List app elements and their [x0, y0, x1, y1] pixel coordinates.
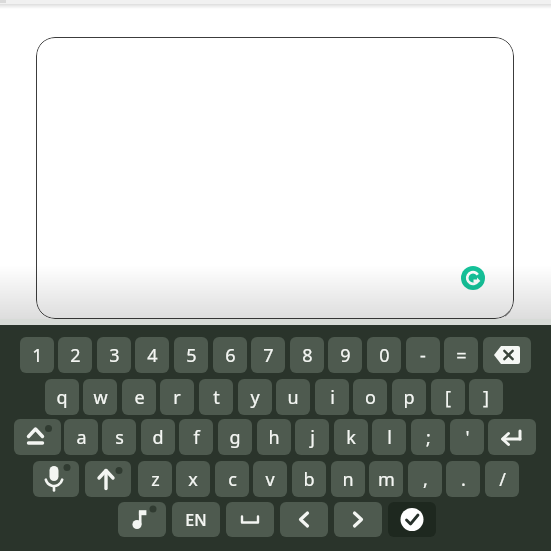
- button[interactable]: c: [215, 461, 249, 497]
- staticText: h: [268, 425, 280, 450]
- button[interactable]: i: [315, 379, 349, 415]
- staticText: q: [56, 385, 68, 410]
- staticText: z: [151, 467, 160, 492]
- button[interactable]: ': [450, 419, 484, 455]
- staticText: -: [420, 343, 426, 368]
- staticText: 3: [109, 343, 120, 368]
- button[interactable]: t: [199, 379, 233, 415]
- button[interactable]: b: [292, 461, 326, 497]
- staticText: n: [342, 467, 354, 492]
- staticText: b: [303, 467, 315, 492]
- button[interactable]: [388, 502, 436, 537]
- staticText: a: [76, 425, 87, 450]
- staticText: 4: [147, 343, 158, 368]
- button[interactable]: q: [45, 379, 79, 415]
- staticText: v: [265, 467, 275, 492]
- staticText: j: [310, 425, 315, 450]
- button[interactable]: 7: [251, 337, 285, 373]
- button[interactable]: 9: [328, 337, 362, 373]
- button[interactable]: l: [372, 419, 406, 455]
- staticText: ': [465, 425, 470, 450]
- button[interactable]: 6: [213, 337, 247, 373]
- staticText: i: [330, 385, 335, 410]
- staticText: l: [387, 425, 392, 450]
- staticText: 7: [263, 343, 274, 368]
- button[interactable]: v: [253, 461, 287, 497]
- staticText: o: [365, 385, 376, 410]
- button[interactable]: 4: [135, 337, 169, 373]
- staticText: t: [213, 385, 220, 410]
- staticText: 6: [225, 343, 236, 368]
- button[interactable]: w: [83, 379, 117, 415]
- button[interactable]: 2: [58, 337, 92, 373]
- staticText: s: [115, 425, 124, 450]
- staticText: 2: [70, 343, 81, 368]
- button[interactable]: 1: [20, 337, 54, 373]
- button[interactable]: 0: [367, 337, 401, 373]
- staticText: y: [250, 385, 260, 410]
- button[interactable]: [280, 502, 328, 537]
- button[interactable]: k: [334, 419, 368, 455]
- staticText: 5: [186, 343, 197, 368]
- button[interactable]: [14, 419, 61, 455]
- staticText: g: [229, 425, 241, 450]
- staticText: =: [456, 343, 467, 368]
- button[interactable]: z: [138, 461, 172, 497]
- button[interactable]: s: [102, 419, 136, 455]
- staticText: d: [152, 425, 164, 450]
- staticText: ;: [426, 425, 431, 450]
- button[interactable]: o: [353, 379, 387, 415]
- button[interactable]: a: [64, 419, 98, 455]
- button[interactable]: [118, 502, 166, 537]
- staticText: 9: [340, 343, 351, 368]
- staticText: /: [499, 467, 506, 492]
- button[interactable]: [334, 502, 382, 537]
- button[interactable]: m: [369, 461, 403, 497]
- button[interactable]: h: [257, 419, 291, 455]
- staticText: e: [134, 385, 145, 410]
- button[interactable]: EN: [172, 502, 220, 537]
- button[interactable]: j: [295, 419, 329, 455]
- button[interactable]: e: [122, 379, 156, 415]
- button[interactable]: 8: [290, 337, 324, 373]
- button[interactable]: /: [485, 461, 519, 497]
- staticText: c: [228, 467, 237, 492]
- button[interactable]: =: [444, 337, 478, 373]
- button[interactable]: [85, 461, 131, 497]
- staticText: ]: [483, 385, 489, 410]
- button[interactable]: n: [331, 461, 365, 497]
- button[interactable]: 5: [174, 337, 208, 373]
- staticText: [: [445, 385, 451, 410]
- staticText: 8: [302, 343, 313, 368]
- button[interactable]: [33, 461, 79, 497]
- staticText: m: [378, 467, 395, 492]
- button[interactable]: ,: [408, 461, 442, 497]
- staticText: .: [461, 467, 466, 492]
- button[interactable]: u: [276, 379, 310, 415]
- button[interactable]: [483, 337, 531, 373]
- button[interactable]: 3: [97, 337, 131, 373]
- button[interactable]: [36, 37, 514, 319]
- button[interactable]: y: [238, 379, 272, 415]
- button[interactable]: p: [392, 379, 426, 415]
- button[interactable]: g: [218, 419, 252, 455]
- staticText: f: [193, 425, 200, 450]
- button[interactable]: -: [406, 337, 440, 373]
- button[interactable]: [226, 502, 274, 537]
- button[interactable]: d: [141, 419, 175, 455]
- button[interactable]: x: [176, 461, 210, 497]
- staticText: 1: [32, 343, 43, 368]
- staticText: 0: [379, 343, 390, 368]
- button[interactable]: ]: [469, 379, 503, 415]
- staticText: w: [93, 385, 108, 410]
- button[interactable]: r: [160, 379, 194, 415]
- button[interactable]: [461, 266, 485, 290]
- button[interactable]: f: [179, 419, 213, 455]
- staticText: p: [403, 385, 415, 410]
- button[interactable]: ;: [411, 419, 445, 455]
- button[interactable]: .: [446, 461, 480, 497]
- staticText: u: [287, 385, 299, 410]
- staticText: ,: [423, 467, 428, 492]
- button[interactable]: [: [431, 379, 465, 415]
- button[interactable]: [488, 419, 536, 455]
